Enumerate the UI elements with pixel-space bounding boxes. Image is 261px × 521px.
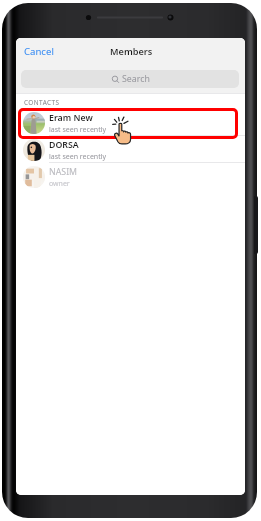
staticText: DORSA: [49, 139, 79, 151]
button[interactable]: Eram New: [16, 109, 245, 136]
staticText: Eram New: [49, 112, 93, 124]
button[interactable]: DORSA: [16, 136, 245, 163]
button[interactable]: Cancel: [20, 43, 58, 60]
button[interactable]: NASIM: [16, 163, 245, 190]
staticText: last seen recently: [49, 125, 107, 135]
staticText: CONTACTS: [24, 98, 60, 107]
staticText: owner: [49, 179, 70, 189]
staticText: NASIM: [49, 166, 78, 178]
staticText: Search: [122, 73, 150, 85]
button[interactable]: Search: [21, 70, 239, 88]
staticText: Members: [110, 45, 153, 58]
staticText: last seen recently: [49, 152, 107, 162]
